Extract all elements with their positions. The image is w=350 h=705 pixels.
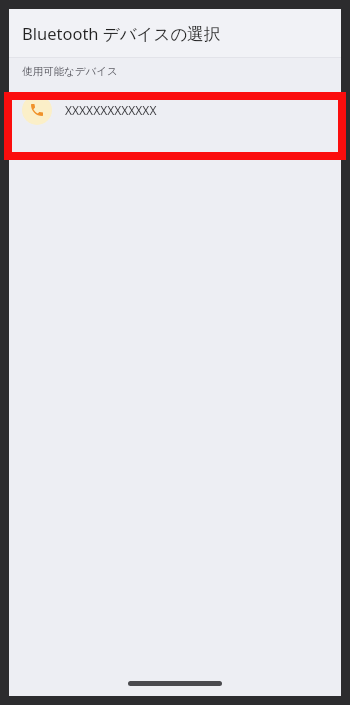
staticText: Bluetooth デバイスの選択	[22, 22, 221, 45]
button[interactable]: XXXXXXXXXXXXX	[9, 84, 341, 136]
staticText: XXXXXXXXXXXXX	[65, 102, 157, 118]
staticText: 使用可能なデバイス	[22, 65, 118, 78]
